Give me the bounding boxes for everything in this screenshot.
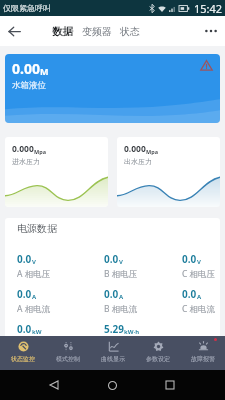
- staticText: B 相电流: [104, 303, 138, 315]
- button[interactable]: 状态: [120, 25, 140, 38]
- staticText: 出水压力: [124, 157, 152, 166]
- button[interactable]: Recents: [157, 372, 183, 398]
- button[interactable]: 故障报警: [180, 336, 225, 370]
- button[interactable]: 变频器: [82, 25, 112, 38]
- staticText: V: [197, 258, 201, 266]
- staticText: A 相电流: [17, 303, 51, 315]
- staticText: V: [32, 258, 36, 266]
- button[interactable]: Back: [41, 372, 67, 398]
- staticText: B 相电压: [104, 268, 138, 280]
- staticText: 0.0: [17, 287, 32, 301]
- staticText: C 相电流: [182, 303, 216, 315]
- staticText: Mpa: [34, 148, 46, 155]
- staticText: 15:42: [194, 1, 223, 16]
- staticText: C 相电压: [182, 268, 216, 280]
- staticText: 0.0: [182, 252, 197, 266]
- button[interactable]: More options: [197, 17, 225, 45]
- staticText: 水箱液位: [12, 80, 46, 91]
- staticText: A: [119, 293, 124, 301]
- staticText: 0.000: [12, 143, 34, 155]
- staticText: 状态: [120, 25, 140, 38]
- staticText: 数据: [52, 25, 73, 38]
- staticText: 模式控制: [56, 355, 80, 363]
- button[interactable]: 状态监控: [0, 336, 45, 370]
- staticText: 0.00: [12, 59, 40, 78]
- staticText: 进水压力: [12, 157, 40, 166]
- staticText: 状态监控: [11, 355, 35, 363]
- staticText: 5.29: [104, 322, 124, 336]
- staticText: 曲线显示: [101, 355, 125, 363]
- staticText: 故障报警: [191, 355, 215, 363]
- staticText: kW·h: [124, 328, 140, 336]
- button[interactable]: 参数设定: [135, 336, 180, 370]
- button[interactable]: 数据: [52, 25, 73, 38]
- staticText: Mpa: [146, 148, 158, 155]
- button[interactable]: Warning: [200, 59, 213, 72]
- staticText: 0.000: [124, 143, 146, 155]
- button[interactable]: Back: [0, 17, 28, 45]
- staticText: 0.0: [104, 252, 119, 266]
- staticText: V: [119, 258, 123, 266]
- staticText: kW: [32, 328, 42, 336]
- staticText: 参数设定: [146, 355, 170, 363]
- staticText: A: [32, 293, 37, 301]
- staticText: 0.0: [104, 287, 119, 301]
- button[interactable]: 0.000: [117, 137, 220, 207]
- staticText: 仅限紧急呼叫: [3, 3, 51, 13]
- button[interactable]: 0.00: [5, 54, 220, 123]
- staticText: 电源数据: [17, 222, 57, 235]
- staticText: A 相电压: [17, 268, 51, 280]
- button[interactable]: 模式控制: [45, 336, 90, 370]
- staticText: 变频器: [82, 25, 112, 38]
- button[interactable]: 曲线显示: [90, 336, 135, 370]
- button[interactable]: Home: [99, 372, 125, 398]
- button[interactable]: 0.000: [5, 137, 108, 207]
- staticText: 0.0: [17, 252, 32, 266]
- staticText: 0.0: [17, 322, 32, 336]
- staticText: 0.0: [182, 287, 197, 301]
- staticText: M: [40, 65, 49, 77]
- staticText: A: [197, 293, 202, 301]
